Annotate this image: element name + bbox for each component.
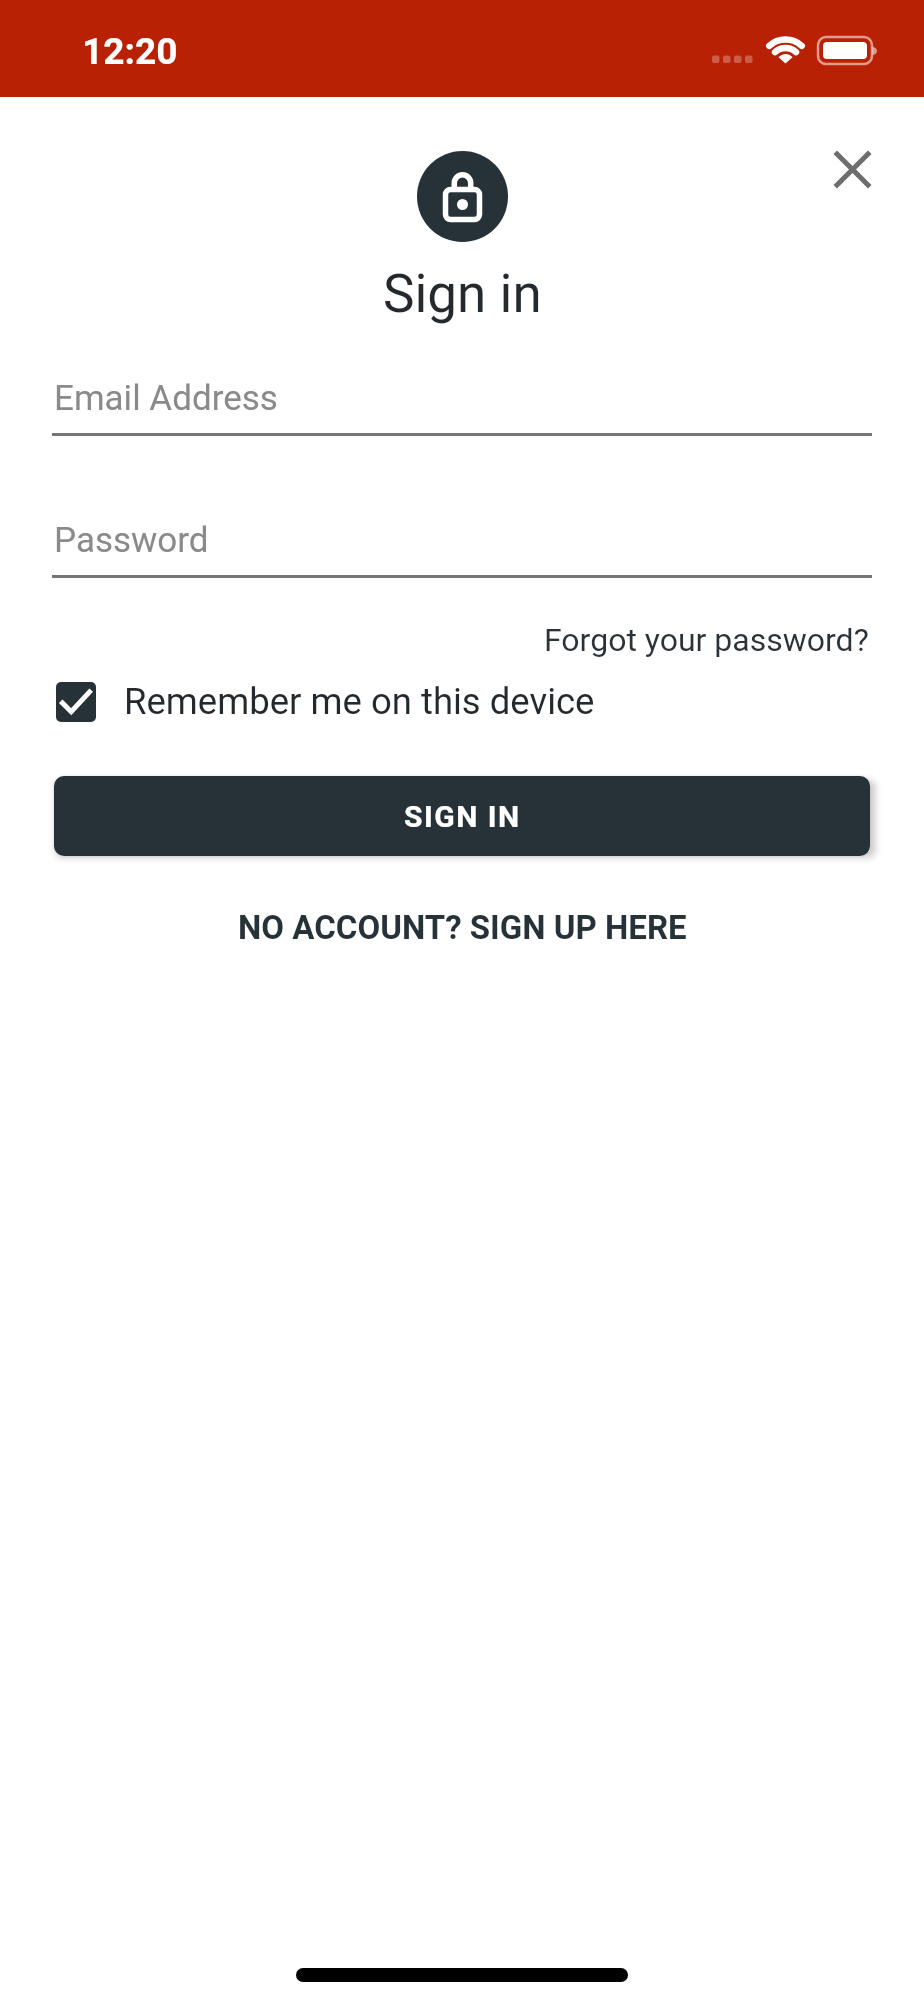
button[interactable]: Forgot your password? xyxy=(544,621,869,659)
staticText: Remember me on this device xyxy=(124,680,595,723)
button[interactable]: Remember me on this device xyxy=(56,680,595,723)
staticText: Email Address xyxy=(54,378,278,419)
staticText: Password xyxy=(54,520,209,561)
button[interactable]: NO ACCOUNT? SIGN UP HERE xyxy=(238,908,687,947)
staticText: Sign in xyxy=(383,263,542,325)
button[interactable]: SIGN IN xyxy=(54,776,870,856)
button[interactable] xyxy=(825,142,880,197)
button[interactable]: Email Address xyxy=(52,352,872,436)
staticText: SIGN IN xyxy=(404,799,521,834)
staticText: 12:20 xyxy=(82,30,178,73)
button[interactable]: Password xyxy=(52,494,872,578)
